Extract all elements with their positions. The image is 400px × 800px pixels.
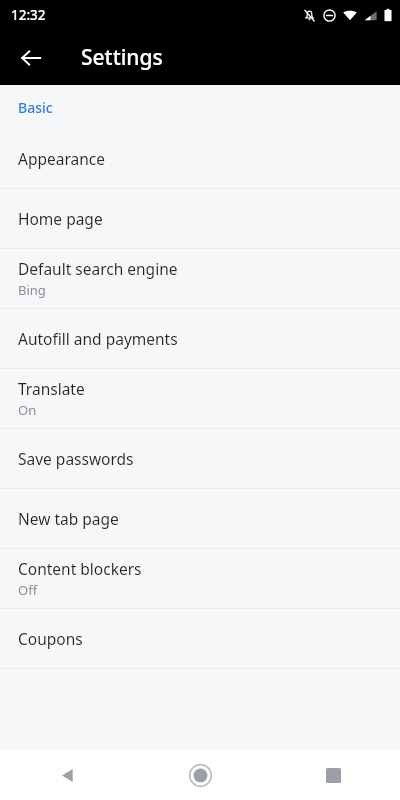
staticText: Appearance [18, 148, 105, 169]
button[interactable]: Home page [0, 189, 400, 248]
button[interactable]: Home [134, 750, 267, 800]
button[interactable]: Save passwords [0, 429, 400, 488]
button[interactable]: Autofill and payments [0, 309, 400, 368]
staticText: Bing [18, 281, 46, 299]
button[interactable]: Back [9, 36, 53, 80]
button[interactable]: New tab page [0, 489, 400, 548]
button[interactable]: Default search engine [0, 249, 400, 308]
staticText: Default search engine [18, 258, 178, 279]
staticText: Save passwords [18, 448, 134, 469]
staticText: Content blockers [18, 558, 142, 579]
staticText: New tab page [18, 508, 119, 529]
button[interactable]: Appearance [0, 129, 400, 188]
staticText: On [18, 401, 37, 419]
button[interactable]: Translate [0, 369, 400, 428]
staticText: Home page [18, 208, 103, 229]
button[interactable]: Recents [267, 750, 400, 800]
staticText: 12:32 [11, 6, 46, 24]
staticText: Autofill and payments [18, 328, 178, 349]
button[interactable]: Content blockers [0, 549, 400, 608]
staticText: Coupons [18, 628, 83, 649]
staticText: Settings [81, 43, 163, 72]
button[interactable]: Back [0, 750, 134, 800]
staticText: Basic [18, 98, 53, 117]
staticText: Off [18, 581, 38, 599]
button[interactable]: Coupons [0, 609, 400, 668]
staticText: Translate [18, 378, 85, 399]
